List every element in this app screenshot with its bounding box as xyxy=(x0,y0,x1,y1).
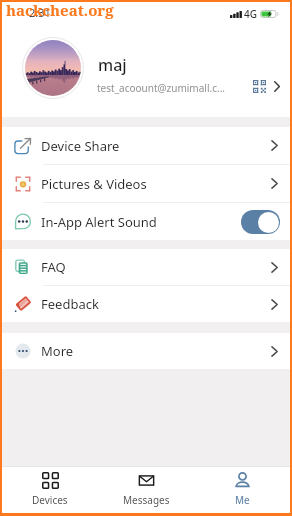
staticText: Pictures & Videos xyxy=(41,175,270,193)
button[interactable]: Me xyxy=(194,467,290,513)
button[interactable]: Devices xyxy=(2,467,98,513)
staticText: maj xyxy=(98,54,127,76)
staticText: hackcheat.org xyxy=(6,0,114,20)
button[interactable]: More xyxy=(2,333,290,369)
staticText: 2:31 xyxy=(29,5,51,20)
button[interactable]: Pictures & Videos xyxy=(2,165,290,202)
staticText: FAQ xyxy=(41,258,270,276)
button[interactable]: QR code xyxy=(253,80,266,93)
staticText: Device Share xyxy=(41,137,270,155)
button[interactable]: maj xyxy=(2,26,290,117)
button[interactable]: Device Share xyxy=(2,127,290,164)
staticText: Feedback xyxy=(41,295,270,313)
staticText: 4G xyxy=(244,7,257,21)
button[interactable]: In-App Alert Sound toggle xyxy=(241,210,280,234)
staticText: test_acoount@zumimall.c... xyxy=(97,81,247,95)
staticText: Me xyxy=(235,493,250,507)
button[interactable]: Messages xyxy=(98,467,194,513)
button[interactable]: In-App Alert Sound xyxy=(2,203,290,240)
button[interactable]: Feedback xyxy=(2,286,290,322)
staticText: Messages xyxy=(123,493,170,507)
staticText: In-App Alert Sound xyxy=(41,213,241,231)
staticText: Devices xyxy=(32,493,68,507)
staticText: More xyxy=(41,342,270,360)
button[interactable]: FAQ xyxy=(2,249,290,285)
